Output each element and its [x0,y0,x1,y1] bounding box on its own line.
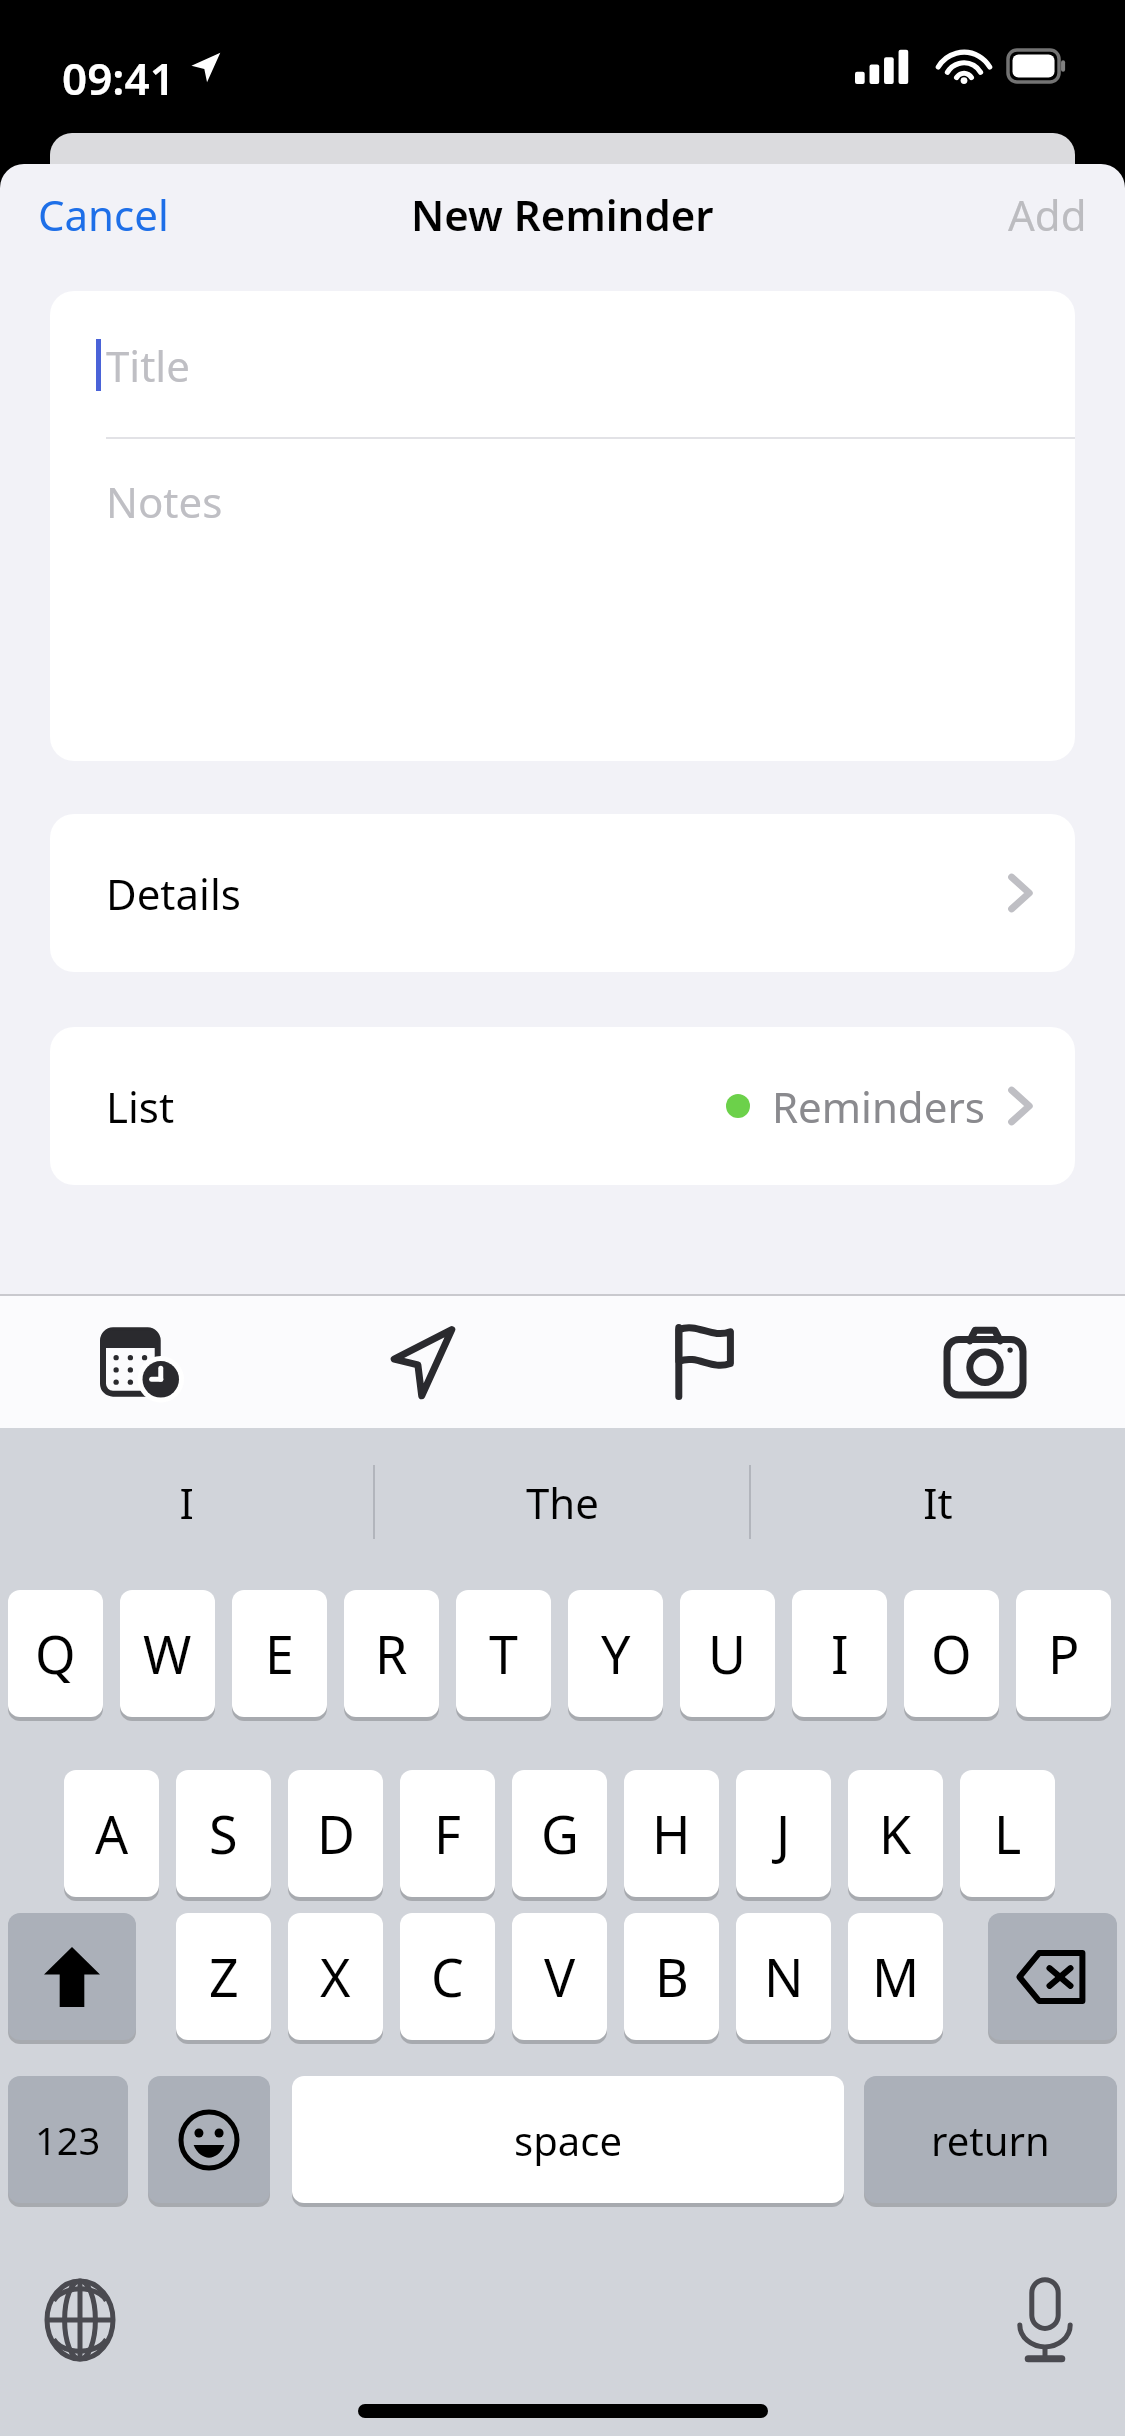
staticText: X [320,1941,351,2012]
staticText: F [434,1798,461,1869]
staticText: New Reminder [411,186,714,243]
button[interactable]: I [792,1590,887,1717]
button[interactable]: D [288,1770,383,1897]
button[interactable]: List [50,1027,1075,1185]
button[interactable]: T [456,1590,551,1717]
button[interactable]: Add photo [844,1296,1125,1428]
staticText: Z [209,1941,239,2012]
button[interactable]: Emoji [148,2076,270,2203]
staticText: Cancel [38,186,169,243]
button[interactable]: M [848,1913,943,2040]
staticText: E [265,1618,294,1689]
staticText: D [317,1798,355,1869]
button[interactable]: J [736,1770,831,1897]
staticText: L [994,1798,1022,1869]
staticText: J [776,1798,791,1869]
other: Shift [44,1947,100,2007]
staticText: 09:41 [62,48,175,108]
button[interactable]: B [624,1913,719,2040]
button[interactable]: Backspace [988,1913,1117,2040]
button[interactable]: Q [8,1590,103,1717]
button[interactable]: R [344,1590,439,1717]
button[interactable]: Change keyboard [38,2278,122,2362]
staticText: Q [35,1618,76,1689]
staticText: The [526,1474,599,1531]
staticText: Title [106,337,190,394]
staticText: I [179,1474,194,1531]
button[interactable]: C [400,1913,495,2040]
staticText: Reminders [772,1078,985,1135]
button[interactable]: 123 [8,2076,128,2203]
button[interactable]: S [176,1770,271,1897]
staticText: W [143,1618,192,1689]
button[interactable]: F [400,1770,495,1897]
button[interactable]: K [848,1770,943,1897]
staticText: space [514,2113,622,2167]
button[interactable]: H [624,1770,719,1897]
button[interactable]: Z [176,1913,271,2040]
button[interactable]: V [512,1913,607,2040]
staticText: V [544,1941,576,2012]
staticText: A [95,1798,129,1869]
other: Backspace [1018,1951,1088,2003]
button[interactable]: I [0,1428,373,1576]
button[interactable]: E [232,1590,327,1717]
button[interactable]: space [292,2076,844,2203]
button[interactable]: Details [50,814,1075,972]
staticText: U [708,1618,747,1689]
staticText: G [541,1798,579,1869]
staticText: K [879,1798,912,1869]
staticText: O [931,1618,972,1689]
button[interactable]: It [751,1428,1125,1576]
staticText: N [764,1941,804,2012]
button[interactable]: Flag [563,1296,844,1428]
button[interactable]: L [960,1770,1055,1897]
staticText: Add [1008,186,1087,243]
staticText: C [431,1941,464,2012]
staticText: T [489,1618,518,1689]
staticText: S [209,1798,238,1869]
button[interactable]: A [64,1770,159,1897]
button[interactable]: Y [568,1590,663,1717]
button[interactable]: U [680,1590,775,1717]
staticText: 123 [35,2114,101,2166]
button[interactable]: Shift [8,1913,136,2040]
staticText: R [375,1618,408,1689]
staticText: It [923,1474,953,1531]
staticText: Y [601,1618,631,1689]
button[interactable]: Date and time [0,1296,282,1428]
button[interactable]: Cancel [20,176,187,253]
staticText: return [931,2113,1050,2167]
button[interactable]: The [375,1428,749,1576]
staticText: I [831,1618,849,1689]
staticText: P [1048,1618,1080,1689]
button[interactable]: X [288,1913,383,2040]
staticText: Notes [106,473,223,530]
button[interactable]: N [736,1913,831,2040]
button[interactable]: Location [282,1296,563,1428]
staticText: List [106,1078,175,1135]
staticText: H [652,1798,691,1869]
button[interactable]: W [120,1590,215,1717]
other: Emoji [178,2109,240,2171]
button[interactable]: Dictate [1003,2278,1087,2362]
staticText: B [655,1941,689,2012]
button[interactable]: return [864,2076,1117,2203]
staticText: Details [106,865,241,922]
button[interactable]: Add [990,176,1105,253]
button[interactable]: O [904,1590,999,1717]
staticText: M [872,1941,920,2012]
button[interactable]: Title [50,291,1075,761]
button[interactable]: P [1016,1590,1111,1717]
button[interactable]: G [512,1770,607,1897]
